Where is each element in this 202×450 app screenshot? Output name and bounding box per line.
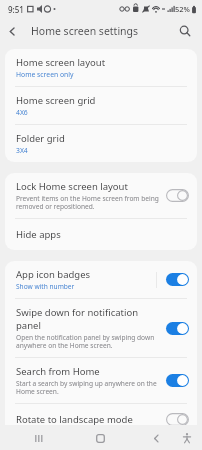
staticText: Home screen layout [16,56,106,69]
staticText: 3X4 [16,146,28,155]
button[interactable]: On [163,320,191,337]
button[interactable]: Rotate to landscape mode [5,404,197,435]
staticText: Show with number [16,282,75,291]
staticText: Open the notification panel by swiping d… [16,333,155,350]
button[interactable]: Off [163,187,191,204]
button[interactable]: Folder grid [5,125,197,162]
button[interactable]: Lock Home screen layout [5,173,197,218]
button[interactable]: Home screen grid [5,87,197,124]
staticText: Search from Home [16,365,100,378]
staticText: Home screen settings [31,24,139,38]
button[interactable]: Home screen layout [5,49,197,86]
button[interactable]: Accessibility [175,426,199,450]
staticText: Lock Home screen layout [16,180,128,193]
button[interactable]: Back [144,426,168,450]
button[interactable]: Home [88,426,112,450]
button[interactable]: On [163,271,191,288]
staticText: Home screen only [16,70,74,79]
button[interactable]: Recent apps [27,426,51,450]
staticText: Rotate to landscape mode [16,413,133,426]
button[interactable]: Off [163,411,191,428]
staticText: Start a search by swiping up anywhere on… [16,379,157,396]
button[interactable]: Navigate up [0,19,24,43]
staticText: Swipe down for notification panel [16,306,159,332]
staticText: 9:51 [8,4,24,15]
staticText: Hide apps [16,228,61,241]
button[interactable]: Search [174,20,196,42]
staticText: Home screen grid [16,94,96,107]
staticText: Folder grid [16,132,65,145]
button[interactable]: App icon badges [5,261,197,298]
staticText: Prevent items on the Home screen from be… [16,194,159,211]
button[interactable]: Search from Home [5,358,197,403]
staticText: 4X6 [16,108,28,117]
button[interactable]: Hide apps [5,219,197,250]
button[interactable]: On [163,372,191,389]
staticText: App icon badges [16,268,91,281]
staticText: 52% [175,4,190,14]
button[interactable]: Swipe down for notification panel [5,299,197,357]
